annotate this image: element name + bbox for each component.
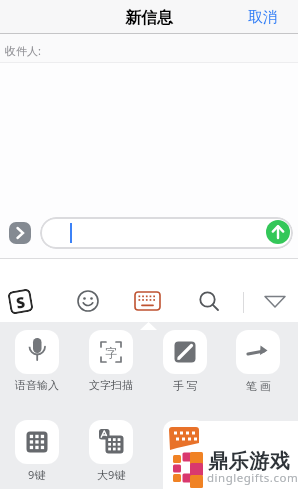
button[interactable] xyxy=(266,220,290,244)
staticText: 9键 xyxy=(28,467,46,482)
button[interactable] xyxy=(198,290,221,313)
button[interactable] xyxy=(77,290,99,312)
button[interactable]: 字 xyxy=(89,330,133,374)
staticText: 取消 xyxy=(248,8,278,27)
button[interactable]: 取消 xyxy=(248,8,278,27)
button[interactable] xyxy=(15,420,59,464)
staticText: 笔 画 xyxy=(246,378,271,393)
staticText: 字 xyxy=(105,345,117,360)
button[interactable] xyxy=(263,294,287,310)
button[interactable] xyxy=(236,330,280,374)
staticText: 鼎乐游戏 xyxy=(208,449,291,474)
button[interactable] xyxy=(89,420,133,464)
button[interactable] xyxy=(15,330,59,374)
staticText: 文字扫描 xyxy=(89,378,133,392)
button[interactable]: S xyxy=(7,288,34,315)
button[interactable] xyxy=(134,291,161,311)
button[interactable]: 收件人: xyxy=(0,34,298,62)
staticText: 手 写 xyxy=(173,378,198,393)
staticText: 新信息 xyxy=(125,8,173,28)
staticText: 语音输入 xyxy=(15,378,59,392)
staticText: dinglegifts.com xyxy=(207,470,298,486)
button[interactable] xyxy=(163,420,207,464)
button[interactable] xyxy=(163,330,207,374)
button[interactable] xyxy=(9,222,31,244)
staticText: S xyxy=(14,291,27,313)
staticText: 大9键 xyxy=(97,467,126,482)
staticText: 收件人: xyxy=(5,43,41,58)
